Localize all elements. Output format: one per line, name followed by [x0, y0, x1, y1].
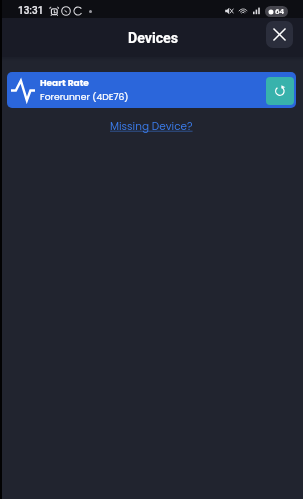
button[interactable]: Refresh: [266, 77, 294, 105]
staticText: Heart Rate: [40, 77, 89, 90]
staticText: Devices: [128, 30, 179, 47]
button[interactable]: Missing Device?: [110, 119, 193, 134]
staticText: Forerunner (4DE76): [40, 90, 129, 103]
button[interactable]: Close: [266, 21, 293, 48]
staticText: 64: [275, 7, 285, 16]
staticText: 13:31: [18, 5, 44, 17]
button[interactable]: Heart Rate: [7, 72, 296, 108]
